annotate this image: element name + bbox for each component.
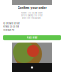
staticText: Review the details below <box>21 12 43 14</box>
staticText: with the restaurant. <box>22 17 42 19</box>
button[interactable]: Shutter <box>12 63 52 72</box>
staticText: Arrives 25-35 min <box>3 26 19 28</box>
staticText: before placing the order <box>21 14 43 17</box>
staticText: Total $28.40 <box>3 29 14 31</box>
staticText: 42 Orchard Street <box>3 22 20 25</box>
button[interactable]: Place order <box>3 35 61 40</box>
staticText: Confirm your order <box>17 6 46 10</box>
staticText: Place order <box>26 36 37 39</box>
